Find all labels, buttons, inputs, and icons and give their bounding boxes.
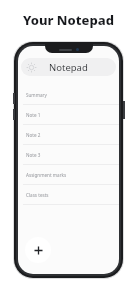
button[interactable]: Note 3 xyxy=(18,145,119,165)
staticText: Note 1 xyxy=(26,112,41,118)
staticText: Note 3 xyxy=(26,152,41,158)
staticText: Notepad xyxy=(49,61,88,74)
staticText: Class tests xyxy=(26,192,49,198)
button[interactable]: Brightness xyxy=(26,62,37,73)
button[interactable]: Note 1 xyxy=(18,105,119,125)
button[interactable]: Brightness xyxy=(21,58,116,76)
staticText: Summary xyxy=(26,92,47,98)
button[interactable]: Note 2 xyxy=(18,125,119,145)
button[interactable]: Add note xyxy=(25,237,51,263)
button[interactable]: Assignment marks xyxy=(18,165,119,185)
staticText: Your Notepad xyxy=(23,11,114,29)
staticText: Assignment marks xyxy=(26,172,67,178)
button[interactable]: Class tests xyxy=(18,185,119,205)
button[interactable]: Summary xyxy=(18,85,119,105)
staticText: Note 2 xyxy=(26,132,41,138)
